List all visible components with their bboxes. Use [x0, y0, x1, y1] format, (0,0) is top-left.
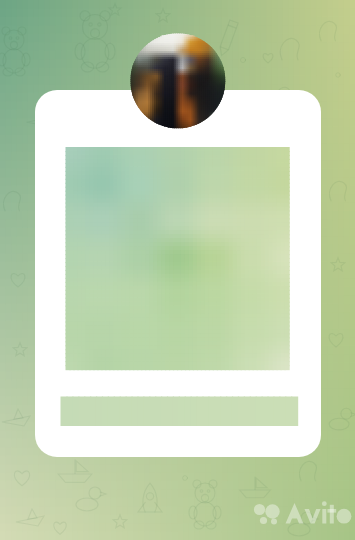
button[interactable]: Seller profile photo [130, 33, 225, 128]
button[interactable] [35, 90, 321, 457]
